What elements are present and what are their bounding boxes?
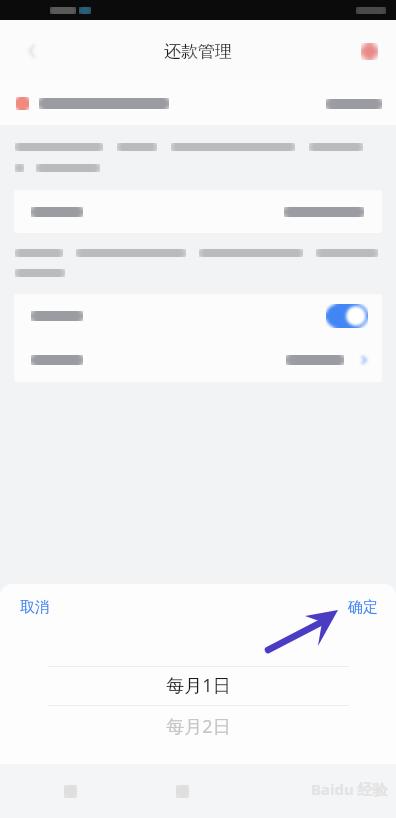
staticText: 每月1日 [166,673,231,698]
staticText: 每月2日 [166,714,231,739]
button[interactable]: 取消 [8,590,62,625]
button[interactable]: 每月2日 [0,706,396,746]
button[interactable] [14,190,382,233]
button[interactable] [14,294,382,337]
button[interactable]: 确定 [336,590,390,625]
staticText: Baidu 经验 [311,779,388,799]
staticText: 还款管理 [164,41,232,62]
button[interactable]: Navigation button [172,781,192,801]
button[interactable]: 每月1日 [0,664,396,706]
staticText: 取消 [20,598,50,617]
button[interactable]: Navigation button [60,781,80,801]
button[interactable]: Help [352,34,386,68]
staticText: 确定 [348,598,378,617]
button[interactable]: More [14,337,382,382]
button[interactable] [0,82,396,125]
other: More [358,354,370,366]
